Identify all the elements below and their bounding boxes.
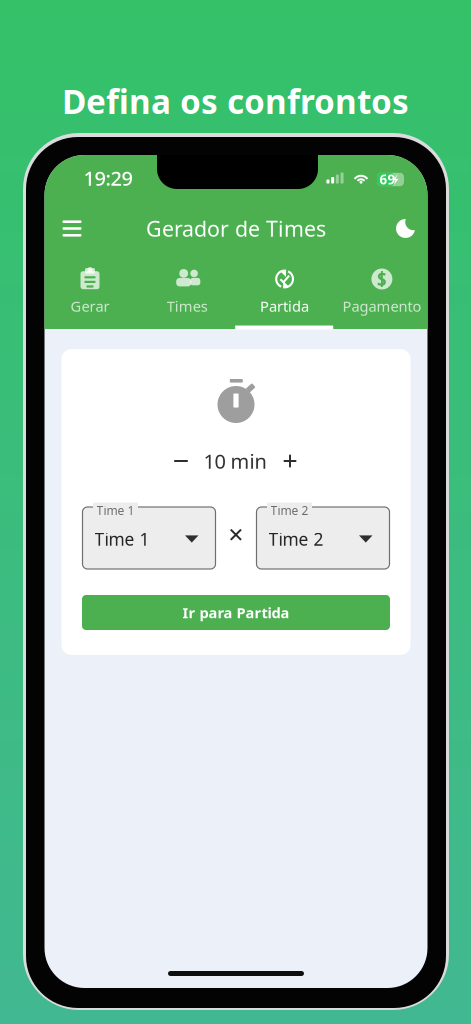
staticText: 19:29 [83, 165, 132, 191]
staticText: 69 [380, 170, 396, 188]
staticText: ✕ [227, 524, 244, 546]
button[interactable]: Time 2 [256, 501, 389, 569]
button[interactable]: Times [139, 257, 236, 323]
button[interactable]: S [333, 257, 430, 323]
button[interactable]: Menu [54, 207, 90, 249]
button[interactable]: Modo escuro [387, 207, 423, 249]
button[interactable]: Time 1 [82, 501, 215, 569]
staticText: Time 1 [96, 502, 134, 518]
staticText: Time 2 [270, 502, 308, 518]
button[interactable]: Diminuir tempo [164, 445, 198, 477]
staticText: Time 2 [268, 527, 323, 550]
staticText: Gerar [70, 296, 109, 316]
button[interactable]: Gerar [41, 257, 139, 323]
staticText: Pagamento [342, 296, 421, 316]
button[interactable]: Partida [236, 257, 333, 323]
staticText: Partida [260, 296, 309, 316]
staticText: Time 1 [94, 527, 149, 550]
staticText: Gerador de Times [146, 214, 326, 243]
staticText: Defina os confrontos [62, 79, 409, 123]
button[interactable]: Aumentar tempo [273, 445, 307, 477]
staticText: 10 min [203, 448, 266, 474]
staticText: Ir para Partida [182, 603, 289, 622]
staticText: Times [167, 296, 208, 316]
button[interactable]: Ir para Partida [82, 595, 390, 630]
staticText: S [377, 267, 387, 290]
